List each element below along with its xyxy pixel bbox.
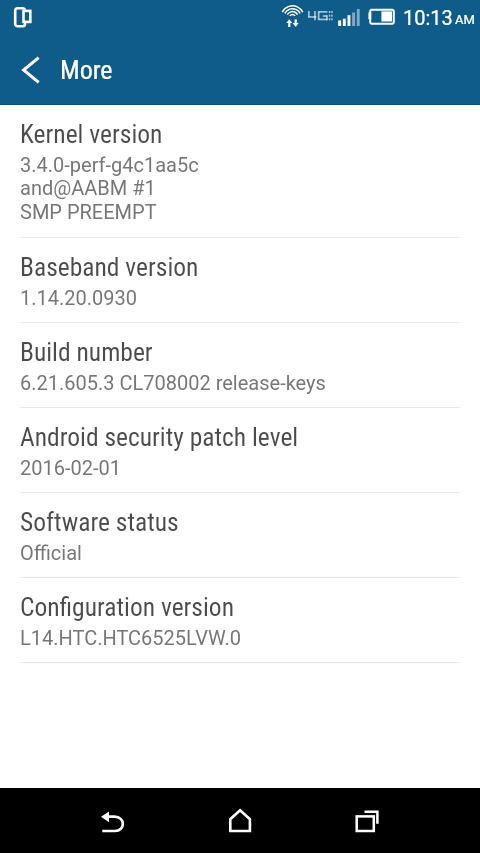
staticText: 3.4.0-perf-g4c1aa5c and@AABM #1 SMP PREE… xyxy=(20,153,199,223)
button[interactable]: Kernel version xyxy=(0,105,480,238)
staticText: 6.21.605.3 CL708002 release-keys xyxy=(20,371,326,394)
staticText: Android security patch level xyxy=(20,422,299,452)
staticText: Kernel version xyxy=(20,119,163,149)
staticText: Configuration version xyxy=(20,592,234,622)
staticText: Official xyxy=(20,541,82,564)
staticText: 1.14.20.0930 xyxy=(20,286,137,309)
staticText: AM xyxy=(455,12,475,27)
staticText: More xyxy=(60,55,113,85)
staticText: Software status xyxy=(20,507,179,537)
button[interactable]: Software status xyxy=(0,493,480,578)
button[interactable]: Configuration version xyxy=(0,578,480,663)
button[interactable]: Android security patch level xyxy=(0,408,480,493)
staticText: Baseband version xyxy=(20,252,199,282)
staticText: Build number xyxy=(20,337,153,367)
button[interactable]: Home xyxy=(211,791,269,849)
button[interactable]: Recent apps xyxy=(337,791,395,849)
staticText: 10:13 xyxy=(403,6,453,29)
staticText: L14.HTC.HTC6525LVW.0 xyxy=(20,626,241,649)
button[interactable]: Navigate up xyxy=(4,42,56,105)
button[interactable]: Build number xyxy=(0,323,480,408)
button[interactable]: Back xyxy=(83,791,141,849)
staticText: 2016-02-01 xyxy=(20,456,121,479)
button[interactable]: Baseband version xyxy=(0,238,480,323)
